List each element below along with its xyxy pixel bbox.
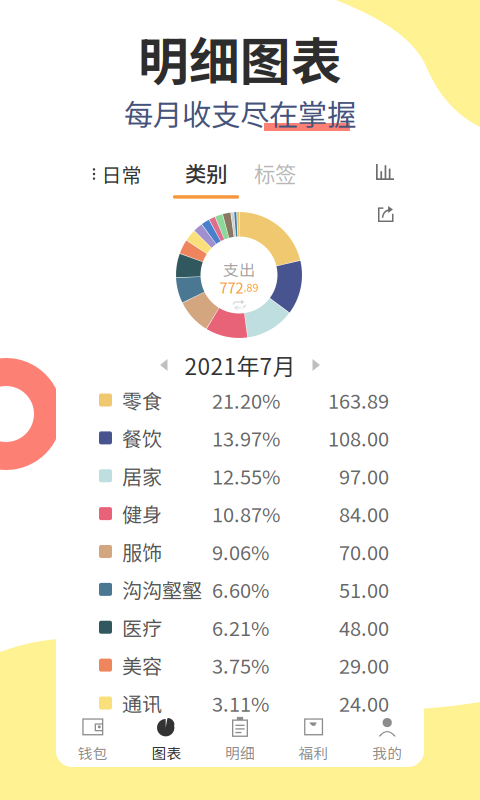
staticText: 3.75% [212, 651, 269, 680]
button[interactable]: 福利 [277, 713, 350, 767]
staticText: 通讯 [122, 688, 162, 717]
button[interactable]: 图表 [130, 713, 203, 767]
staticText: 3.11% [212, 688, 269, 717]
staticText: 每月收支尽在掌握 [124, 92, 356, 134]
button[interactable]: 居家 [56, 457, 424, 495]
staticText: .89 [243, 279, 258, 295]
staticText: 福利 [299, 742, 329, 763]
staticText: 医疗 [122, 613, 162, 642]
button[interactable]: 健身 [56, 495, 424, 533]
button[interactable]: 沟沟壑壑 [56, 570, 424, 608]
staticText: 163.89 [328, 385, 389, 414]
staticText: 48.00 [339, 613, 389, 642]
button[interactable]: 美容 [56, 646, 424, 684]
button[interactable]: 我的 [350, 713, 424, 767]
button[interactable]: 医疗 [56, 608, 424, 646]
staticText: 108.00 [328, 423, 389, 452]
button[interactable]: 零食 [56, 381, 424, 419]
staticText: 10.87% [212, 499, 280, 528]
staticText: 明细 [225, 742, 255, 763]
button[interactable]: 标签 [248, 152, 302, 194]
staticText: 餐饮 [122, 423, 162, 452]
staticText: 明细图表 [138, 21, 342, 95]
staticText: 钱包 [78, 742, 108, 763]
staticText: 健身 [122, 499, 162, 528]
button[interactable]: 餐饮 [56, 419, 424, 457]
staticText: 29.00 [339, 651, 389, 680]
staticText: 97.00 [339, 461, 389, 490]
button[interactable]: 通讯 [56, 684, 424, 722]
staticText: 772 [219, 276, 243, 298]
button[interactable]: Share [373, 200, 399, 228]
staticText: 美容 [122, 651, 162, 680]
button[interactable]: 日常 [86, 151, 147, 196]
button[interactable]: 服饰 [56, 533, 424, 570]
staticText: 零食 [122, 385, 162, 414]
staticText: 84.00 [339, 499, 389, 528]
staticText: 支出 [223, 257, 255, 281]
staticText: 居家 [122, 461, 162, 490]
staticText: 我的 [372, 742, 402, 763]
staticText: 51.00 [339, 575, 389, 604]
staticText: 21.20% [212, 385, 280, 414]
staticText: 13.97% [212, 423, 280, 452]
staticText: 24.00 [339, 688, 389, 717]
staticText: 12.55% [212, 461, 280, 490]
button[interactable]: 类别 [173, 157, 239, 199]
button[interactable]: 明细 [203, 713, 277, 767]
staticText: 9.06% [212, 537, 269, 566]
staticText: 2021年7月 [184, 349, 295, 381]
button[interactable]: 钱包 [56, 713, 130, 767]
staticText: 6.60% [212, 575, 269, 604]
staticText: 图表 [151, 742, 181, 763]
staticText: 70.00 [339, 537, 389, 566]
staticText: 沟沟壑壑 [122, 575, 202, 604]
button[interactable]: Next month [307, 354, 324, 375]
staticText: 标签 [254, 158, 296, 188]
button[interactable]: Previous month [155, 354, 172, 375]
button[interactable]: Bar chart [371, 159, 399, 185]
staticText: 类别 [185, 157, 227, 188]
staticText: 日常 [101, 159, 141, 188]
staticText: 6.21% [212, 613, 269, 642]
staticText: 服饰 [122, 537, 162, 566]
